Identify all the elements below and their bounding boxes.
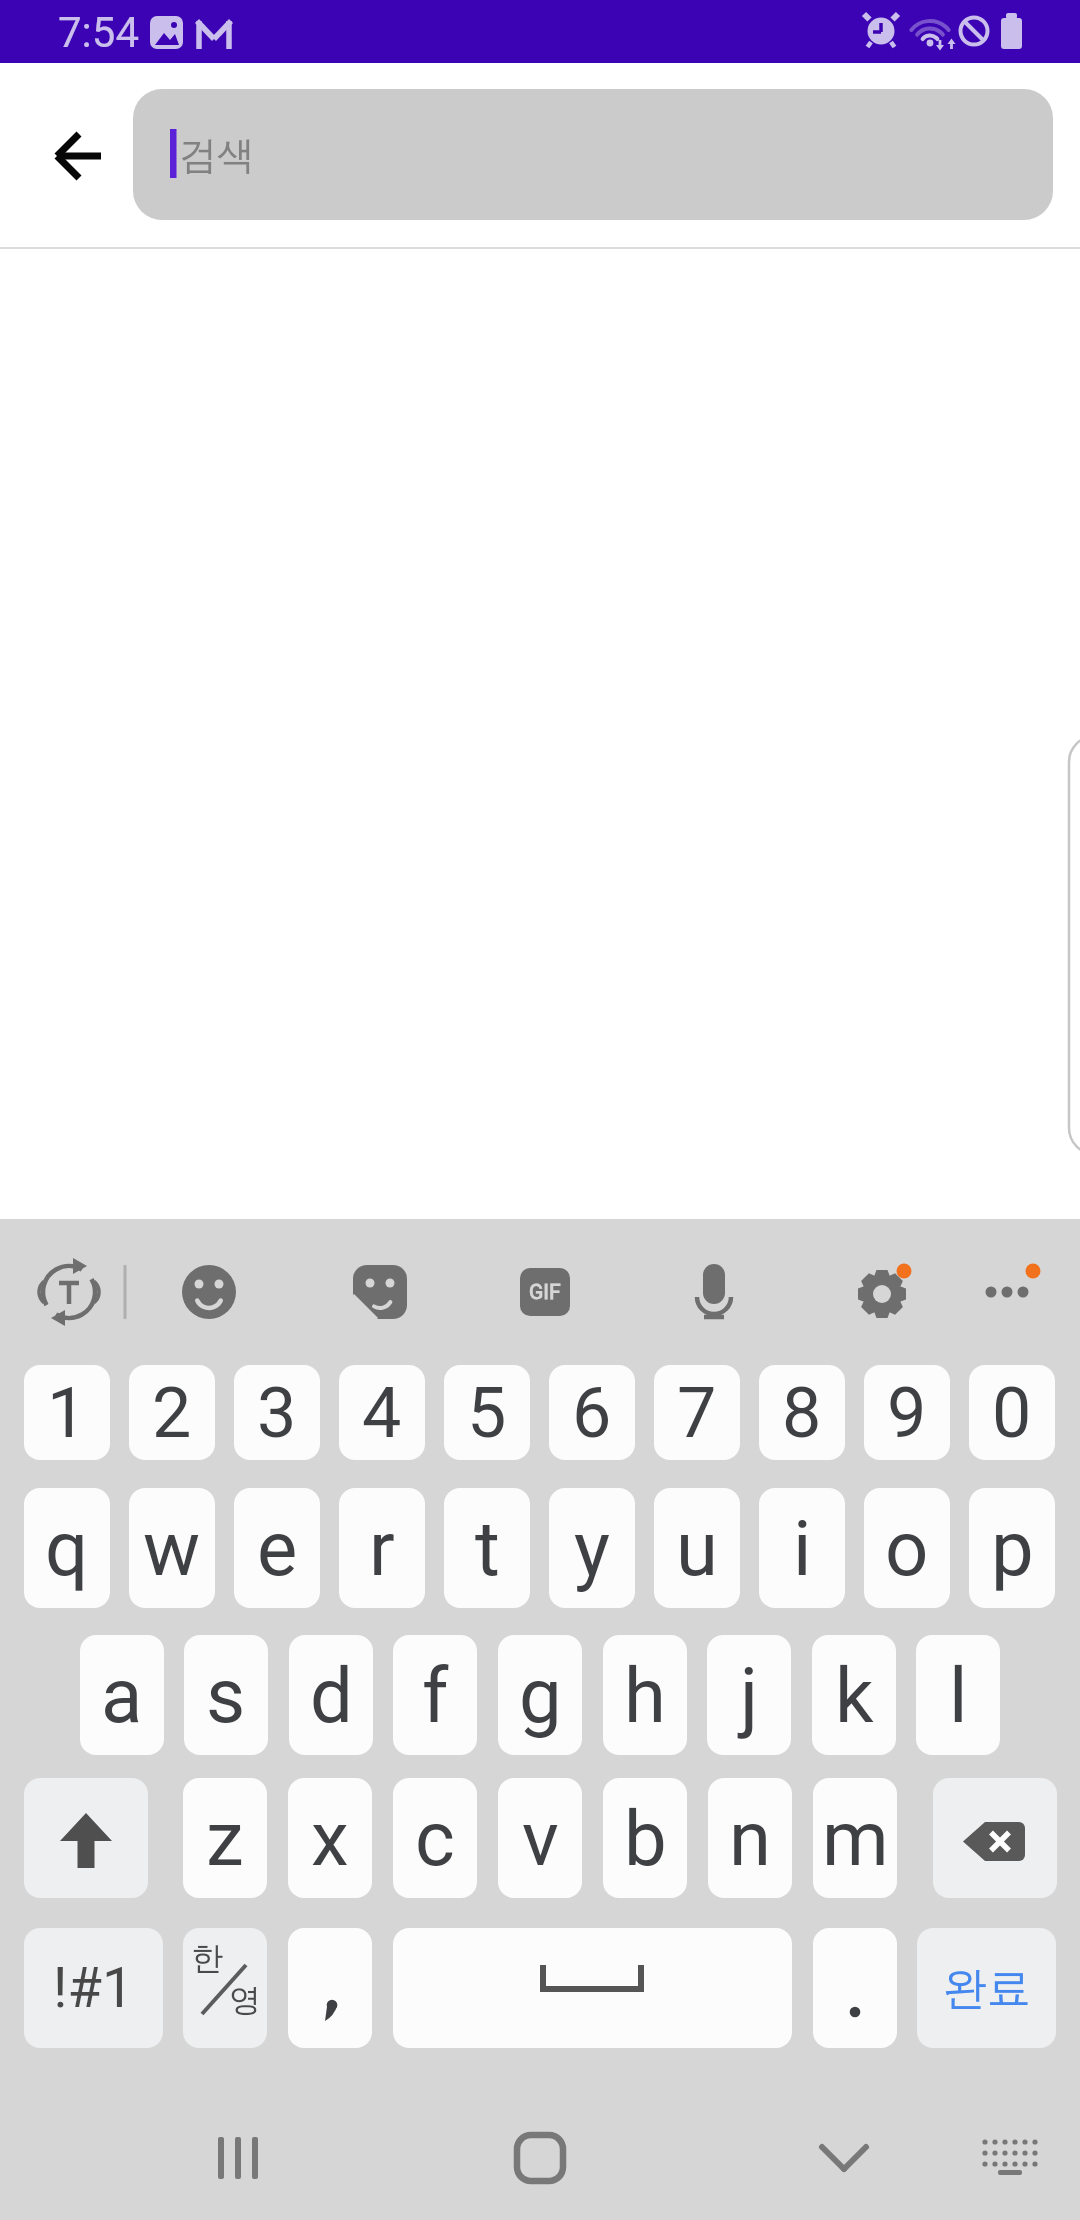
staticText: 1 [47,1372,87,1454]
button[interactable] [38,116,118,196]
button[interactable]: 3 [234,1365,320,1460]
button[interactable]: n [708,1778,792,1898]
button[interactable]: 7 [654,1365,740,1460]
button[interactable]: h [603,1635,687,1755]
staticText: b [624,1794,667,1883]
button[interactable]: k [812,1635,896,1755]
button[interactable]: r [339,1488,425,1608]
button[interactable]: 4 [339,1365,425,1460]
button[interactable]: a [80,1635,164,1755]
staticText: !#1 [53,1955,134,2021]
staticText: w [143,1504,201,1593]
staticText: 검색 [179,131,255,179]
staticText: 7:54 [58,8,139,57]
button[interactable]: 한 [183,1928,267,2048]
button[interactable]: j [707,1635,791,1755]
button[interactable]: p [969,1488,1055,1608]
staticText: m [822,1794,889,1883]
button[interactable] [813,1928,897,2048]
staticText: q [45,1504,89,1593]
button[interactable]: 1 [24,1365,110,1460]
staticText: k [835,1651,874,1740]
button[interactable] [955,2103,1065,2213]
button[interactable] [967,1252,1047,1332]
staticText: n [729,1794,771,1883]
staticText: x [311,1794,349,1883]
button[interactable]: 9 [864,1365,950,1460]
staticText: 5 [467,1372,507,1454]
button[interactable]: 0 [969,1365,1055,1460]
button[interactable] [505,1252,585,1332]
button[interactable]: t [444,1488,530,1608]
button[interactable]: l [916,1635,1000,1755]
button[interactable]: x [288,1778,372,1898]
staticText: g [519,1651,562,1740]
staticText: j [740,1651,759,1740]
button[interactable] [29,1252,109,1332]
staticText: 8 [782,1372,822,1454]
button[interactable]: m [813,1778,897,1898]
staticText: i [793,1504,812,1593]
staticText: a [101,1651,143,1740]
button[interactable] [183,2103,293,2213]
staticText: GIF [529,1280,561,1305]
staticText: s [206,1651,246,1740]
staticText: 완료 [943,1961,1031,2016]
staticText: f [422,1651,449,1740]
button[interactable] [340,1252,420,1332]
button[interactable]: 완료 [917,1928,1056,2048]
staticText: 영 [229,1980,261,2020]
button[interactable] [485,2103,595,2213]
staticText: e [257,1504,298,1593]
button[interactable]: y [549,1488,635,1608]
staticText: l [949,1651,968,1740]
staticText: h [624,1651,666,1740]
button[interactable]: f [393,1635,477,1755]
button[interactable]: g [498,1635,582,1755]
staticText: 6 [572,1372,612,1454]
button[interactable] [24,1778,148,1898]
button[interactable]: 6 [549,1365,635,1460]
button[interactable] [674,1252,754,1332]
staticText: d [310,1651,353,1740]
button[interactable]: u [654,1488,740,1608]
button[interactable]: 8 [759,1365,845,1460]
button[interactable]: !#1 [24,1928,163,2048]
staticText: 3 [257,1372,297,1454]
button[interactable]: s [184,1635,268,1755]
button[interactable]: b [603,1778,687,1898]
button[interactable] [288,1928,372,2048]
button[interactable] [393,1928,792,2048]
button[interactable]: v [498,1778,582,1898]
staticText: y [574,1504,610,1593]
staticText: 한 [191,1938,223,1978]
button[interactable]: o [864,1488,950,1608]
staticText: p [991,1504,1034,1593]
staticText: r [369,1504,395,1593]
staticText: c [415,1794,455,1883]
button[interactable] [789,2103,899,2213]
button[interactable]: e [234,1488,320,1608]
staticText: 7 [677,1372,717,1454]
button[interactable]: i [759,1488,845,1608]
staticText: 9 [887,1372,927,1454]
button[interactable] [842,1252,922,1332]
button[interactable]: 5 [444,1365,530,1460]
staticText: 0 [992,1372,1032,1454]
button[interactable]: q [24,1488,110,1608]
staticText: o [885,1504,929,1593]
button[interactable]: c [393,1778,477,1898]
staticText: z [206,1794,244,1883]
button[interactable]: w [129,1488,215,1608]
staticText: 2 [152,1372,192,1454]
button[interactable]: z [183,1778,267,1898]
button[interactable] [169,1252,249,1332]
staticText: u [676,1504,718,1593]
button[interactable]: 검색 [133,89,1053,220]
button[interactable]: d [289,1635,373,1755]
staticText: 4 [362,1372,402,1454]
staticText: v [522,1794,559,1883]
button[interactable] [933,1778,1057,1898]
staticText: t [475,1504,500,1593]
button[interactable]: 2 [129,1365,215,1460]
